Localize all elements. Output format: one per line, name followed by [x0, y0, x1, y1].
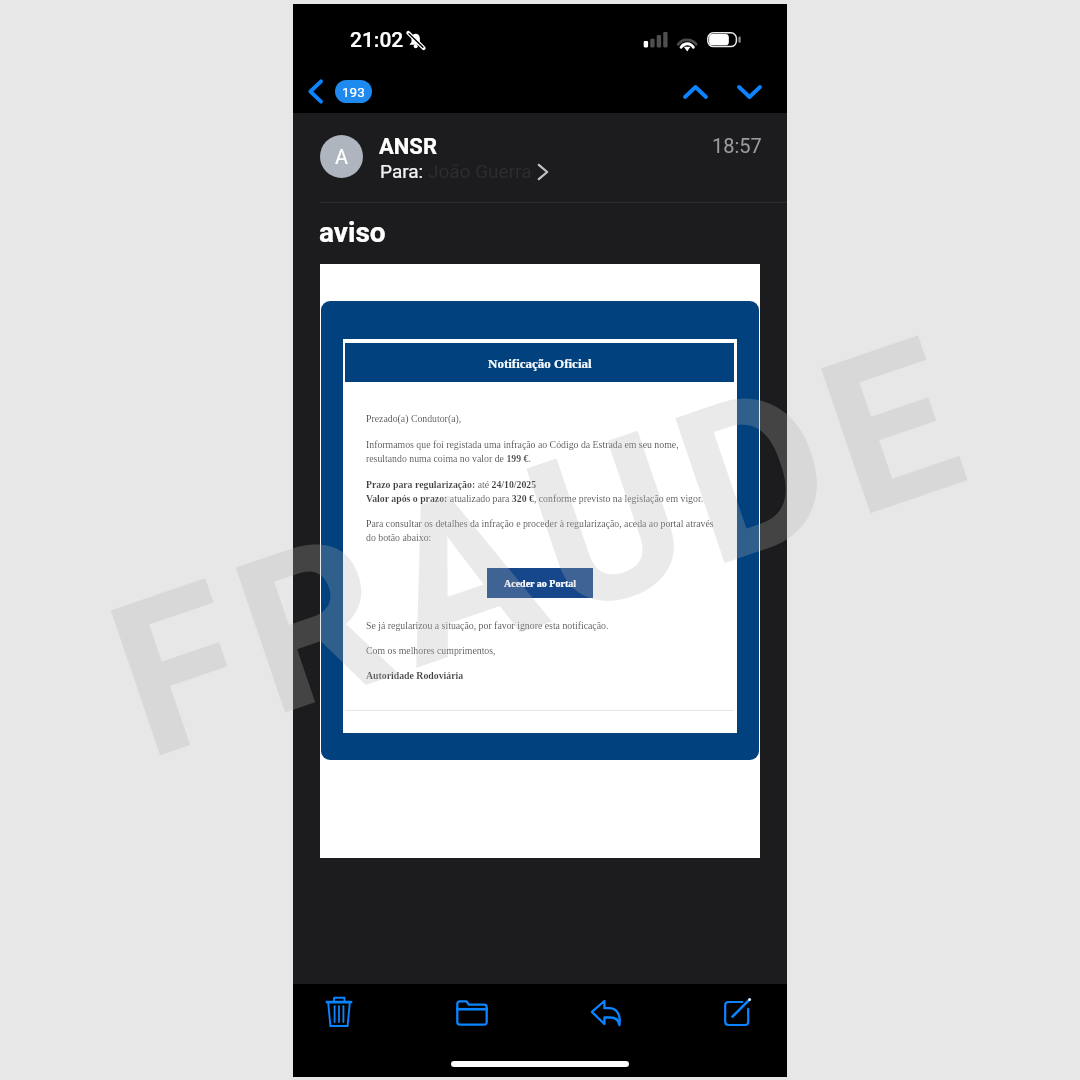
- button[interactable]: Aceder ao Portal: [487, 568, 593, 598]
- button[interactable]: Reply: [582, 989, 630, 1037]
- staticText: resultando numa coima no valor de 199 €.: [366, 453, 531, 464]
- staticText: 193: [342, 84, 365, 100]
- button[interactable]: Back to Inbox, 193 unread: [301, 72, 381, 116]
- button[interactable]: A: [293, 117, 787, 200]
- staticText: Informamos que foi registada uma infraçã…: [366, 439, 679, 450]
- staticText: Aceder ao Portal: [504, 578, 577, 589]
- staticText: FRAUDE: [83, 285, 1003, 810]
- button[interactable]: Compose: [714, 988, 762, 1036]
- button[interactable]: Delete: [315, 987, 363, 1035]
- staticText: Autoridade Rodoviária: [366, 670, 464, 681]
- button[interactable]: Move to folder: [448, 989, 496, 1037]
- staticText: 18:57: [712, 134, 762, 157]
- staticText: Prazo para regularização: até 24/10/2025: [366, 479, 537, 490]
- staticText: 21:02: [350, 28, 404, 53]
- staticText: Para: João Guerra: [380, 160, 532, 182]
- staticText: Com os melhores cumprimentos,: [366, 645, 496, 656]
- staticText: aviso: [319, 216, 386, 249]
- staticText: Valor após o prazo: atualizado para 320 …: [366, 493, 704, 504]
- staticText: ANSR: [379, 134, 437, 160]
- staticText: A: [335, 145, 349, 168]
- staticText: Para consultar os detalhes da infração e…: [366, 518, 714, 529]
- button[interactable]: Previous message: [675, 72, 715, 112]
- button[interactable]: Next message: [729, 72, 769, 112]
- staticText: Prezado(a) Condutor(a),: [366, 413, 462, 424]
- staticText: Se já regularizou a situação, por favor …: [366, 620, 609, 631]
- staticText: do botão abaixo:: [366, 532, 432, 543]
- staticText: Notificação Oficial: [488, 356, 592, 370]
